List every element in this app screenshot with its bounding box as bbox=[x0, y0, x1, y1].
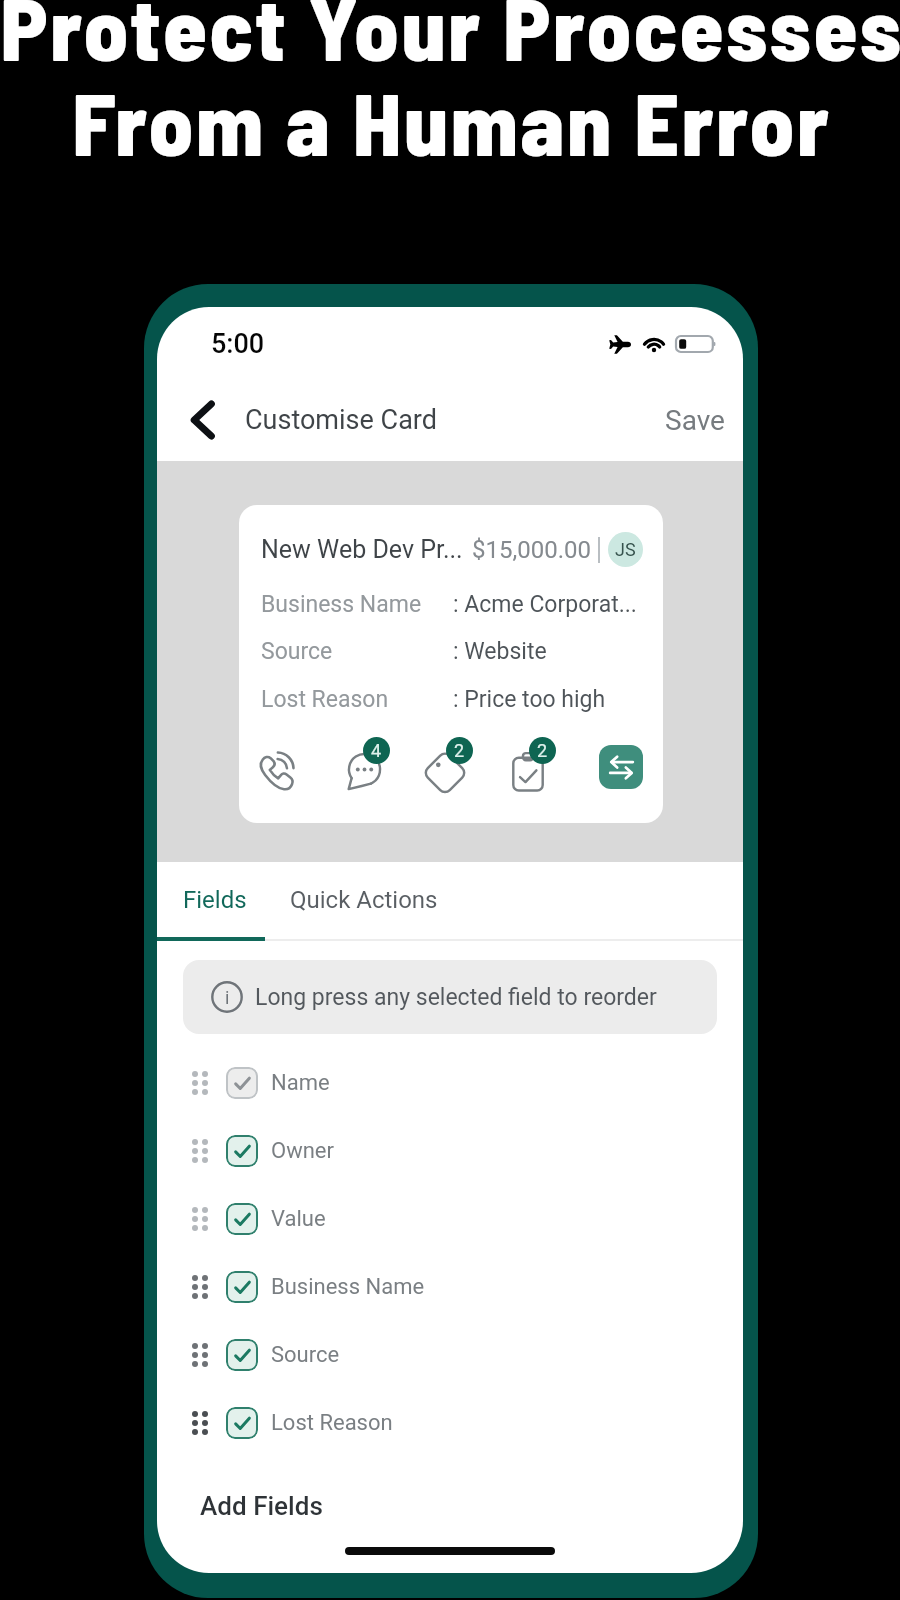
staticText: 4 bbox=[371, 740, 382, 761]
button[interactable]: Owner bbox=[157, 1117, 743, 1185]
button[interactable]: Notes bbox=[341, 741, 393, 793]
staticText: : Acme Corporat... bbox=[453, 591, 637, 618]
staticText: Name bbox=[271, 1070, 330, 1096]
button[interactable]: Name bbox=[157, 1049, 743, 1117]
staticText: Quick Actions bbox=[290, 886, 438, 914]
staticText: 5:00 bbox=[211, 328, 265, 360]
staticText: Source bbox=[261, 638, 333, 665]
staticText: Business Name bbox=[261, 591, 422, 618]
staticText: Owner bbox=[271, 1138, 334, 1164]
staticText: Add Fields bbox=[200, 1491, 323, 1521]
button[interactable]: Call bbox=[258, 741, 310, 793]
staticText: : Price too high bbox=[453, 686, 606, 713]
staticText: Lost Reason bbox=[271, 1410, 393, 1436]
staticText: 2 bbox=[454, 740, 465, 761]
staticText: 2 bbox=[537, 740, 548, 761]
staticText: From a Human Error bbox=[72, 68, 832, 174]
staticText: Save bbox=[665, 404, 725, 437]
staticText: JS bbox=[615, 539, 636, 560]
staticText: Long press any selected field to reorder bbox=[255, 984, 657, 1011]
staticText: Business Name bbox=[271, 1274, 425, 1300]
staticText: : Website bbox=[453, 638, 547, 665]
button[interactable]: i bbox=[183, 960, 717, 1034]
staticText: New Web Dev Pr... bbox=[261, 535, 463, 564]
button[interactable]: Tags bbox=[424, 741, 476, 793]
button[interactable]: Quick Actions bbox=[274, 862, 454, 938]
staticText: Protect Your Processes bbox=[0, 0, 900, 79]
button[interactable]: Tasks bbox=[507, 741, 559, 793]
button[interactable]: Fields bbox=[167, 862, 263, 938]
button[interactable]: Value bbox=[157, 1185, 743, 1253]
staticText: $15,000.00 bbox=[472, 536, 591, 564]
button[interactable]: New Web Dev Pr... bbox=[239, 505, 663, 823]
button[interactable]: Back bbox=[175, 392, 231, 448]
staticText: Value bbox=[271, 1206, 326, 1232]
button[interactable]: Source bbox=[157, 1321, 743, 1389]
button[interactable]: Save bbox=[647, 392, 743, 449]
button[interactable]: Add Fields bbox=[157, 1478, 743, 1534]
button[interactable]: Lost Reason bbox=[157, 1389, 743, 1457]
staticText: Customise Card bbox=[245, 404, 437, 436]
staticText: Lost Reason bbox=[261, 686, 389, 713]
button[interactable]: Move stage bbox=[599, 745, 643, 789]
staticText: i bbox=[225, 987, 230, 1008]
staticText: Fields bbox=[183, 886, 247, 914]
button[interactable]: Business Name bbox=[157, 1253, 743, 1321]
staticText: Source bbox=[271, 1342, 340, 1368]
